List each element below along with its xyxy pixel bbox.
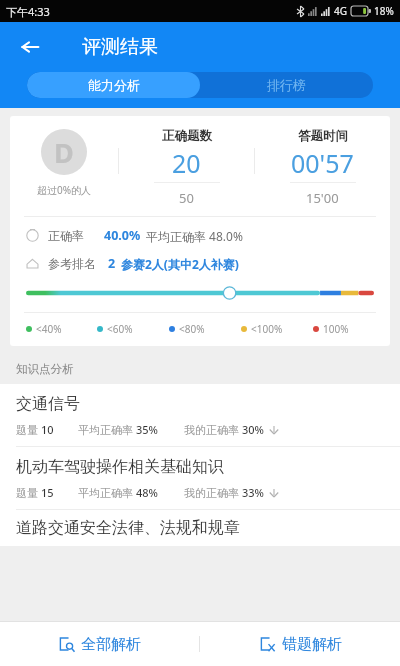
staticText: 30% xyxy=(242,422,264,437)
staticText: 题量 xyxy=(16,422,41,437)
staticText: 00'57 xyxy=(291,146,354,180)
staticText: 35% xyxy=(136,422,158,437)
button[interactable]: 能力分析 xyxy=(27,72,200,98)
staticText: 我的正确率 xyxy=(184,485,242,500)
button[interactable]: 交通信号 xyxy=(0,384,400,446)
staticText: 10 xyxy=(41,422,54,437)
staticText: <60% xyxy=(107,322,133,336)
staticText: 知识点分析 xyxy=(16,362,74,376)
staticText: 33% xyxy=(242,485,264,500)
staticText: 超过0%的人 xyxy=(37,183,92,197)
staticText: 我的正确率 xyxy=(184,422,242,437)
staticText: 排行榜 xyxy=(267,77,306,93)
staticText: 18% xyxy=(374,4,394,18)
staticText: 50 xyxy=(179,189,194,207)
staticText: 平均正确率 48.0% xyxy=(146,228,243,244)
staticText: 题量 xyxy=(16,485,41,500)
staticText: 评测结果 xyxy=(82,35,158,59)
staticText: 下午4:33 xyxy=(6,4,50,19)
staticText: <40% xyxy=(36,322,62,336)
staticText: 参赛2人(其中2人补赛) xyxy=(121,256,239,272)
staticText: 道路交通安全法律、法规和规章 xyxy=(16,518,240,538)
staticText: 15'00 xyxy=(306,189,339,207)
button[interactable]: 机动车驾驶操作相关基础知识 xyxy=(0,447,400,509)
staticText: 正确率 xyxy=(48,228,84,243)
staticText: 全部解析 xyxy=(81,635,141,654)
staticText: 能力分析 xyxy=(88,77,140,93)
staticText: D xyxy=(54,134,74,171)
button[interactable]: 道路交通安全法律、法规和规章 xyxy=(0,510,400,546)
staticText: 正确题数 xyxy=(162,128,212,144)
staticText: 平均正确率 xyxy=(78,422,136,437)
button[interactable]: 排行榜 xyxy=(200,72,373,98)
staticText: 参考排名 xyxy=(48,256,96,271)
button[interactable]: 全部解析 xyxy=(0,622,199,666)
staticText: 20 xyxy=(172,146,201,180)
staticText: 交通信号 xyxy=(16,394,80,414)
staticText: 平均正确率 xyxy=(78,485,136,500)
button[interactable]: 错题解析 xyxy=(200,622,400,666)
staticText: <100% xyxy=(251,322,283,336)
staticText: 机动车驾驶操作相关基础知识 xyxy=(16,457,224,477)
staticText: 4G xyxy=(334,4,347,18)
staticText: 15 xyxy=(41,485,54,500)
staticText: 40.0% xyxy=(104,227,141,244)
staticText: 答题时间 xyxy=(298,128,348,144)
staticText: 错题解析 xyxy=(282,635,342,654)
staticText: <80% xyxy=(179,322,205,336)
staticText: 2 xyxy=(108,255,116,272)
staticText: 48% xyxy=(136,485,158,500)
staticText: 100% xyxy=(323,322,349,336)
button[interactable]: Back xyxy=(12,29,48,65)
